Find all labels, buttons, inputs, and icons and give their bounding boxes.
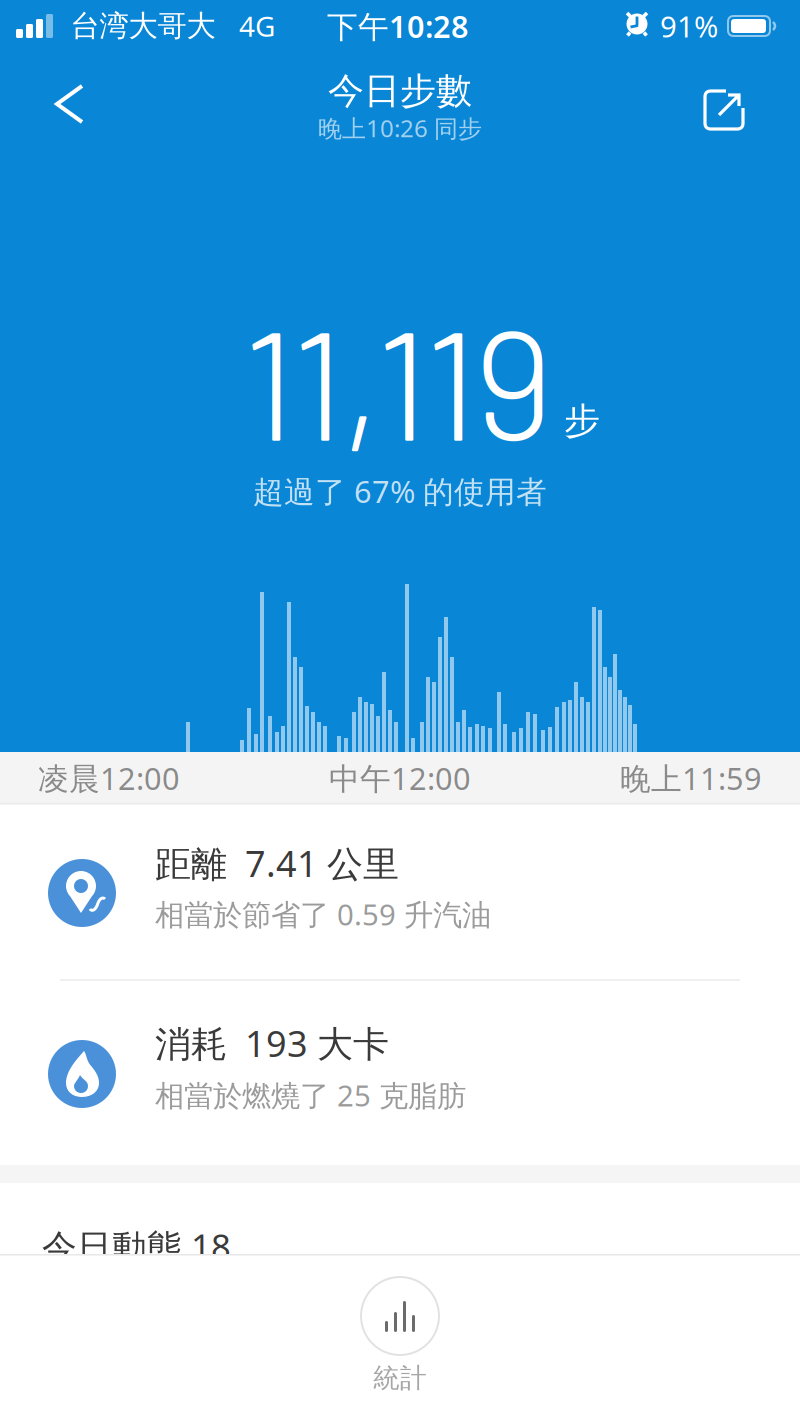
staticText: 下午10:28 (327, 6, 469, 46)
staticText: 凌晨12:00 (38, 758, 180, 798)
staticText: 相當於節省了 0.59 升汽油 (155, 894, 491, 933)
staticText: 相當於燃燒了 25 克脂肪 (155, 1075, 466, 1114)
staticText: 11,119 (242, 287, 553, 471)
staticText: 超過了 67% 的使用者 (253, 471, 547, 511)
staticText: 91% (660, 6, 718, 45)
staticText: 統計 (373, 1362, 427, 1394)
staticText: 今日動態 18 (42, 1223, 231, 1269)
staticText: 晚上10:26 同步 (318, 112, 482, 144)
button[interactable]: Share (700, 86, 748, 134)
staticText: 晚上11:59 (620, 758, 762, 798)
staticText: 消耗 193 大卡 (155, 1019, 389, 1067)
staticText: 4G (239, 7, 275, 45)
button[interactable]: Back (48, 82, 92, 126)
staticText: 今日步數 (328, 69, 472, 113)
button[interactable]: 統計 (350, 1266, 450, 1396)
staticText: 步 (564, 399, 600, 443)
staticText: 中午12:00 (329, 758, 471, 798)
staticText: 台湾大哥大 (70, 8, 215, 44)
staticText: 距離 7.41 公里 (155, 839, 399, 887)
